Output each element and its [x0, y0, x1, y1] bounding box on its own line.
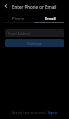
button[interactable]: Continue: [5, 39, 64, 47]
button[interactable]: Email: [34, 15, 66, 22]
staticText: Sign in: [48, 111, 58, 115]
staticText: Enter Phone or Email: [12, 4, 57, 10]
staticText: Already have an account?: [12, 111, 48, 115]
staticText: Phone: [12, 16, 25, 21]
button[interactable]: Back: [1, 1, 10, 10]
button[interactable]: Sign in: [48, 111, 58, 115]
staticText: Email: [45, 16, 56, 21]
button[interactable]: Phone: [3, 15, 34, 22]
button[interactable]: Email Address: [5, 29, 64, 37]
staticText: Email Address: [8, 31, 31, 36]
staticText: Continue: [27, 41, 42, 46]
